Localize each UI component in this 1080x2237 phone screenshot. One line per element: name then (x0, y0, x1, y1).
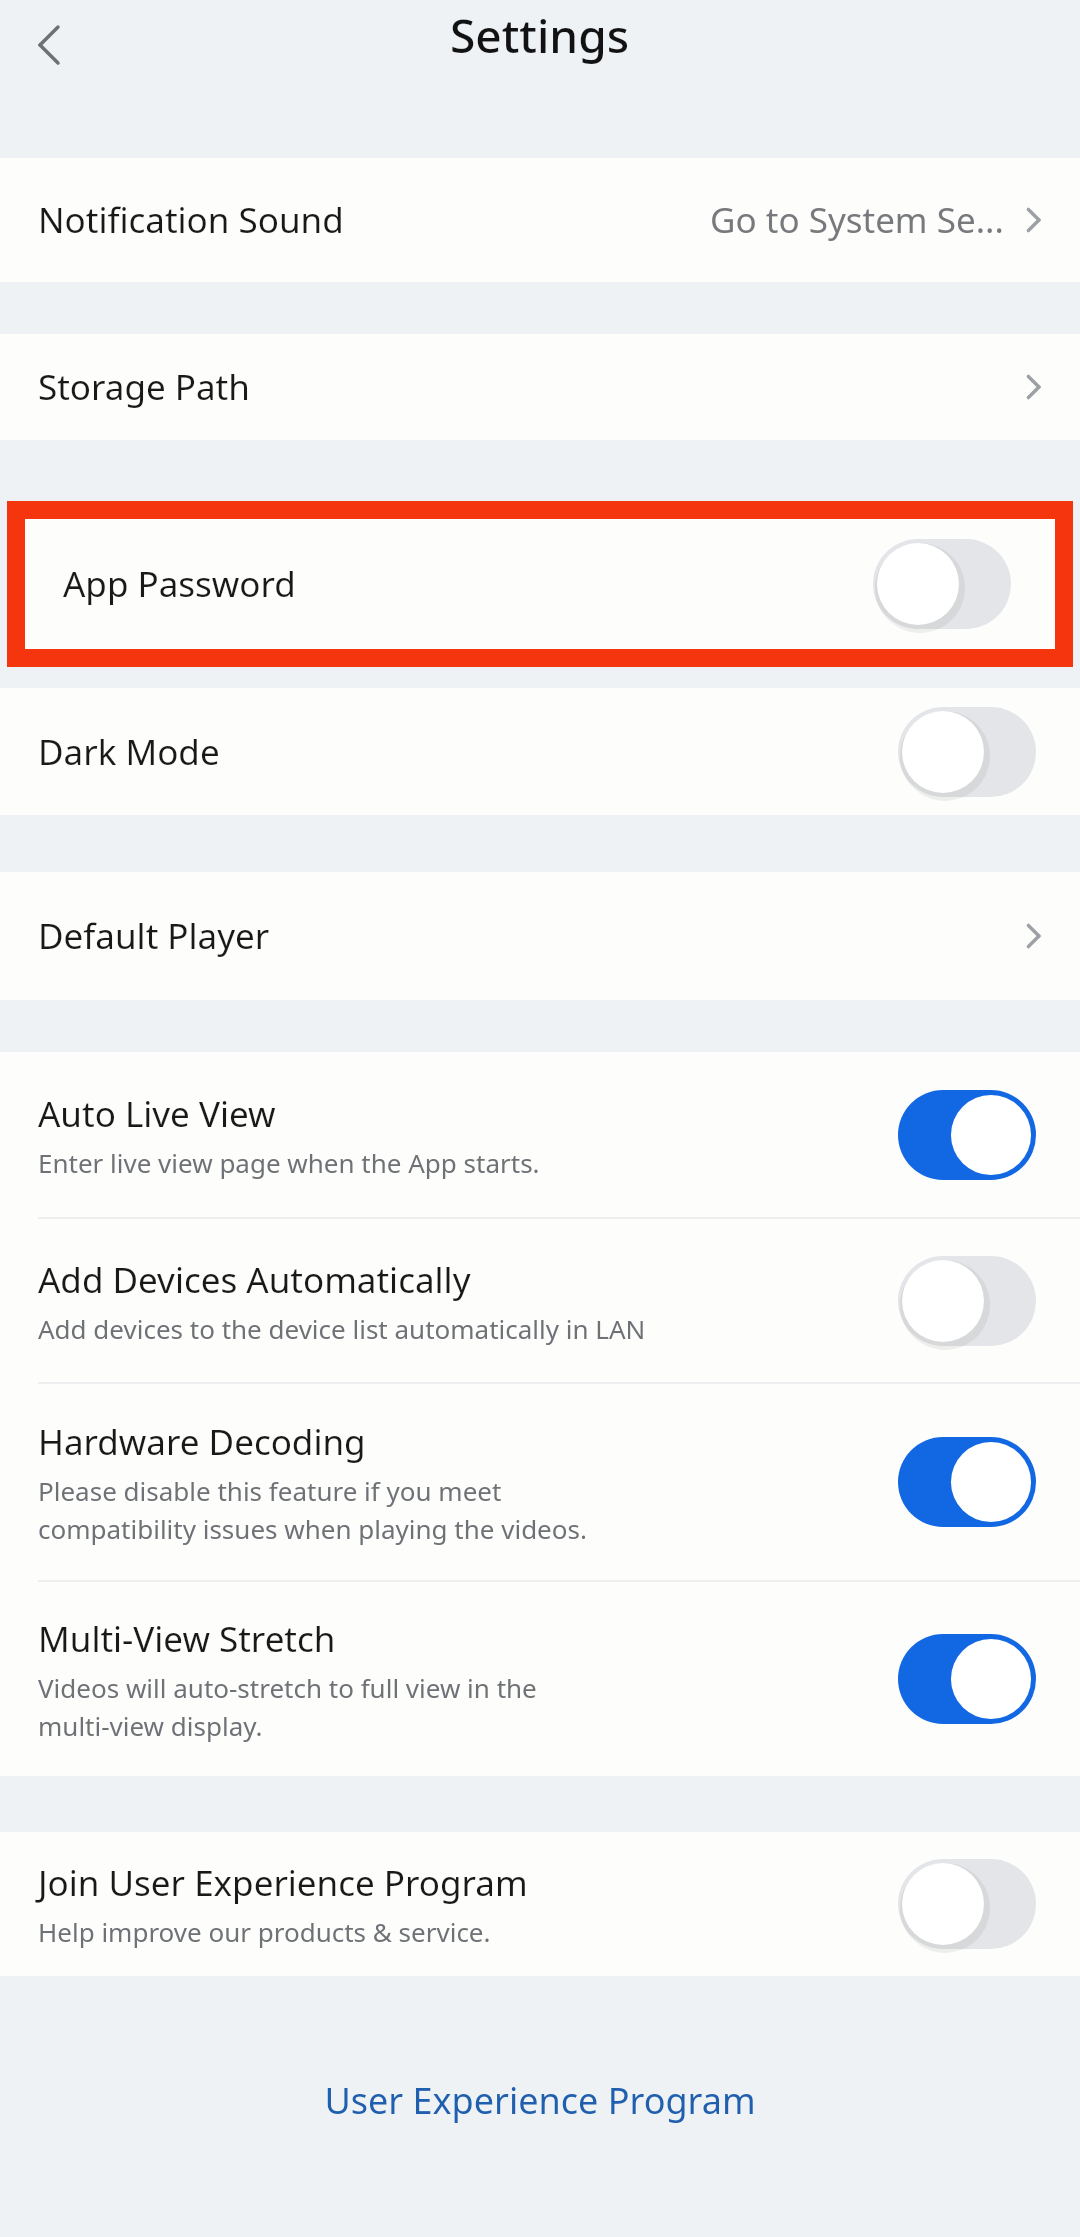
staticText: Add Devices Automatically (38, 1256, 471, 1304)
staticText: Please disable this feature if you meet … (38, 1473, 587, 1546)
button[interactable]: Switch off (873, 538, 1011, 630)
staticText: Storage Path (38, 363, 250, 411)
staticText: Hardware Decoding (38, 1418, 366, 1466)
button[interactable]: Switch on (898, 1436, 1036, 1528)
staticText: Auto Live View (38, 1090, 276, 1138)
staticText: Enter live view page when the App starts… (38, 1145, 540, 1180)
staticText: Settings (450, 4, 630, 67)
button[interactable]: Storage Path (0, 334, 1080, 440)
staticText: Videos will auto-stretch to full view in… (38, 1670, 537, 1743)
button[interactable]: Join User Experience Program (0, 1832, 1080, 1976)
button[interactable]: User Experience Program (0, 2064, 1080, 2137)
button[interactable]: Dark Mode (0, 688, 1080, 815)
button[interactable]: Multi-View Stretch (0, 1582, 1080, 1776)
button[interactable]: Switch on (898, 1633, 1036, 1725)
button[interactable]: Hardware Decoding (0, 1384, 1080, 1580)
staticText: Go to System Se... (710, 196, 1004, 244)
button[interactable]: Default Player (0, 872, 1080, 1000)
staticText: Multi-View Stretch (38, 1615, 336, 1663)
staticText: Add devices to the device list automatic… (38, 1311, 646, 1346)
staticText: User Experience Program (324, 2076, 756, 2125)
button[interactable]: Auto Live View (0, 1052, 1080, 1217)
button[interactable]: App Password (25, 519, 1055, 649)
staticText: Dark Mode (38, 728, 220, 776)
button[interactable]: Switch off (898, 1858, 1036, 1950)
staticText: App Password (63, 560, 296, 608)
button[interactable]: Back (10, 6, 88, 84)
button[interactable]: Switch off (898, 706, 1036, 798)
staticText: Default Player (38, 912, 270, 960)
button[interactable]: Add Devices Automatically (0, 1219, 1080, 1382)
button[interactable]: Notification Sound (0, 158, 1080, 282)
staticText: Join User Experience Program (38, 1859, 528, 1907)
staticText: Help improve our products & service. (38, 1914, 491, 1949)
button[interactable]: Switch on (898, 1089, 1036, 1181)
staticText: Notification Sound (38, 196, 344, 244)
button[interactable]: Switch off (898, 1255, 1036, 1347)
